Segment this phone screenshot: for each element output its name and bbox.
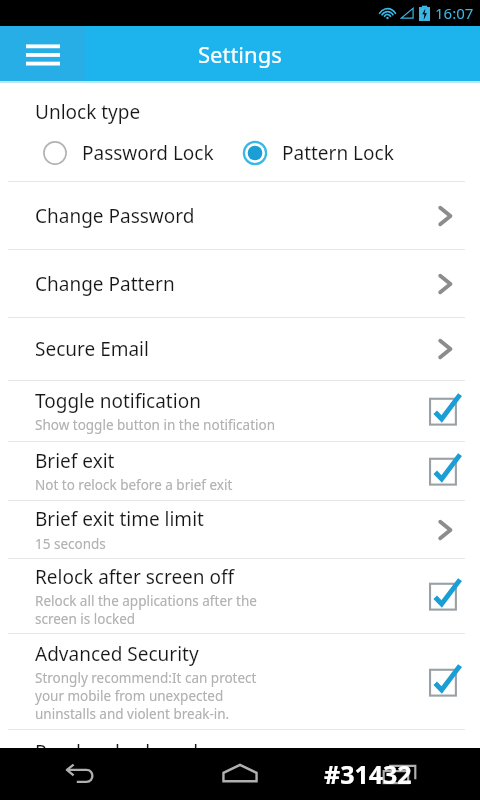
button[interactable]: Random keyboard <box>0 730 480 748</box>
staticText: Strongly recommend:It can protect <box>35 669 257 687</box>
button[interactable]: Back <box>0 748 160 800</box>
button[interactable]: Secure Email <box>0 318 480 380</box>
staticText: 15 seconds <box>35 535 106 553</box>
button[interactable]: Brief exit <box>0 442 480 500</box>
button[interactable]: Change Pattern <box>0 250 480 317</box>
staticText: Show toggle button in the notification <box>35 416 276 434</box>
staticText: uninstalls and violent break-in. <box>35 705 230 723</box>
staticText: Change Pattern <box>35 271 175 297</box>
staticText: Random keyboard <box>35 739 199 748</box>
staticText: Brief exit <box>35 448 115 474</box>
staticText: Not to relock before a brief exit <box>35 476 233 494</box>
staticText: Password Lock <box>82 140 214 166</box>
button[interactable]: Password Lock <box>0 137 240 169</box>
staticText: #31432 <box>324 757 412 791</box>
button[interactable]: Home <box>160 748 320 800</box>
button[interactable]: Relock after screen off <box>0 559 480 633</box>
button[interactable]: Advanced Security <box>0 634 480 729</box>
staticText: 16:07 <box>435 3 474 23</box>
staticText: Relock after screen off <box>35 564 235 590</box>
staticText: Settings <box>198 39 282 69</box>
staticText: Relock all the applications after the <box>35 592 257 610</box>
button[interactable]: Brief exit time limit <box>0 501 480 558</box>
staticText: your mobile from unexpected <box>35 687 224 705</box>
button[interactable]: Recent apps <box>320 748 480 800</box>
staticText: Secure Email <box>35 336 149 362</box>
button[interactable]: Change Password <box>0 182 480 249</box>
button[interactable]: Open navigation menu <box>0 26 86 81</box>
staticText: Pattern Lock <box>282 140 394 166</box>
button[interactable]: Toggle notification <box>0 381 480 441</box>
staticText: Change Password <box>35 203 195 229</box>
staticText: Unlock type <box>35 99 141 125</box>
staticText: screen is locked <box>35 610 136 628</box>
staticText: Toggle notification <box>35 388 201 414</box>
button[interactable]: Pattern Lock <box>240 137 480 169</box>
staticText: Brief exit time limit <box>35 506 204 532</box>
staticText: Advanced Security <box>35 641 199 667</box>
